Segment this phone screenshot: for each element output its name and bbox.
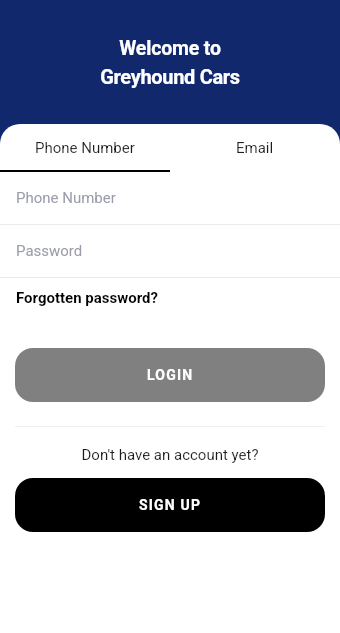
button[interactable]: Email [170,124,340,171]
button[interactable]: Password [0,232,340,278]
staticText: Forgotten password? [16,289,158,307]
button[interactable]: Phone Number [0,124,170,171]
staticText: Email [236,139,274,157]
staticText: Don't have an account yet? [0,446,340,464]
staticText: SIGN UP [139,497,202,513]
button[interactable]: Phone Number [0,179,340,225]
staticText: Greyhound Cars [0,65,340,88]
staticText: Phone Number [16,189,116,207]
staticText: Phone Number [35,139,135,157]
staticText: LOGIN [147,367,194,383]
button[interactable]: SIGN UP [15,478,325,532]
button[interactable]: LOGIN [15,348,325,402]
staticText: Password [16,242,83,260]
button[interactable]: Forgotten password? [0,284,174,312]
staticText: Welcome to [0,37,340,60]
